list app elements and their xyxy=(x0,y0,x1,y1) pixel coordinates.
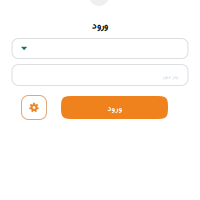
staticText: ورود xyxy=(91,19,107,34)
staticText: رمز عبور xyxy=(162,73,178,81)
staticText: ورود xyxy=(107,103,122,115)
button[interactable]: Settings xyxy=(21,95,46,119)
button[interactable]: ورود xyxy=(61,96,168,119)
button[interactable]: Password xyxy=(12,64,188,85)
button[interactable]: Select xyxy=(12,38,188,58)
